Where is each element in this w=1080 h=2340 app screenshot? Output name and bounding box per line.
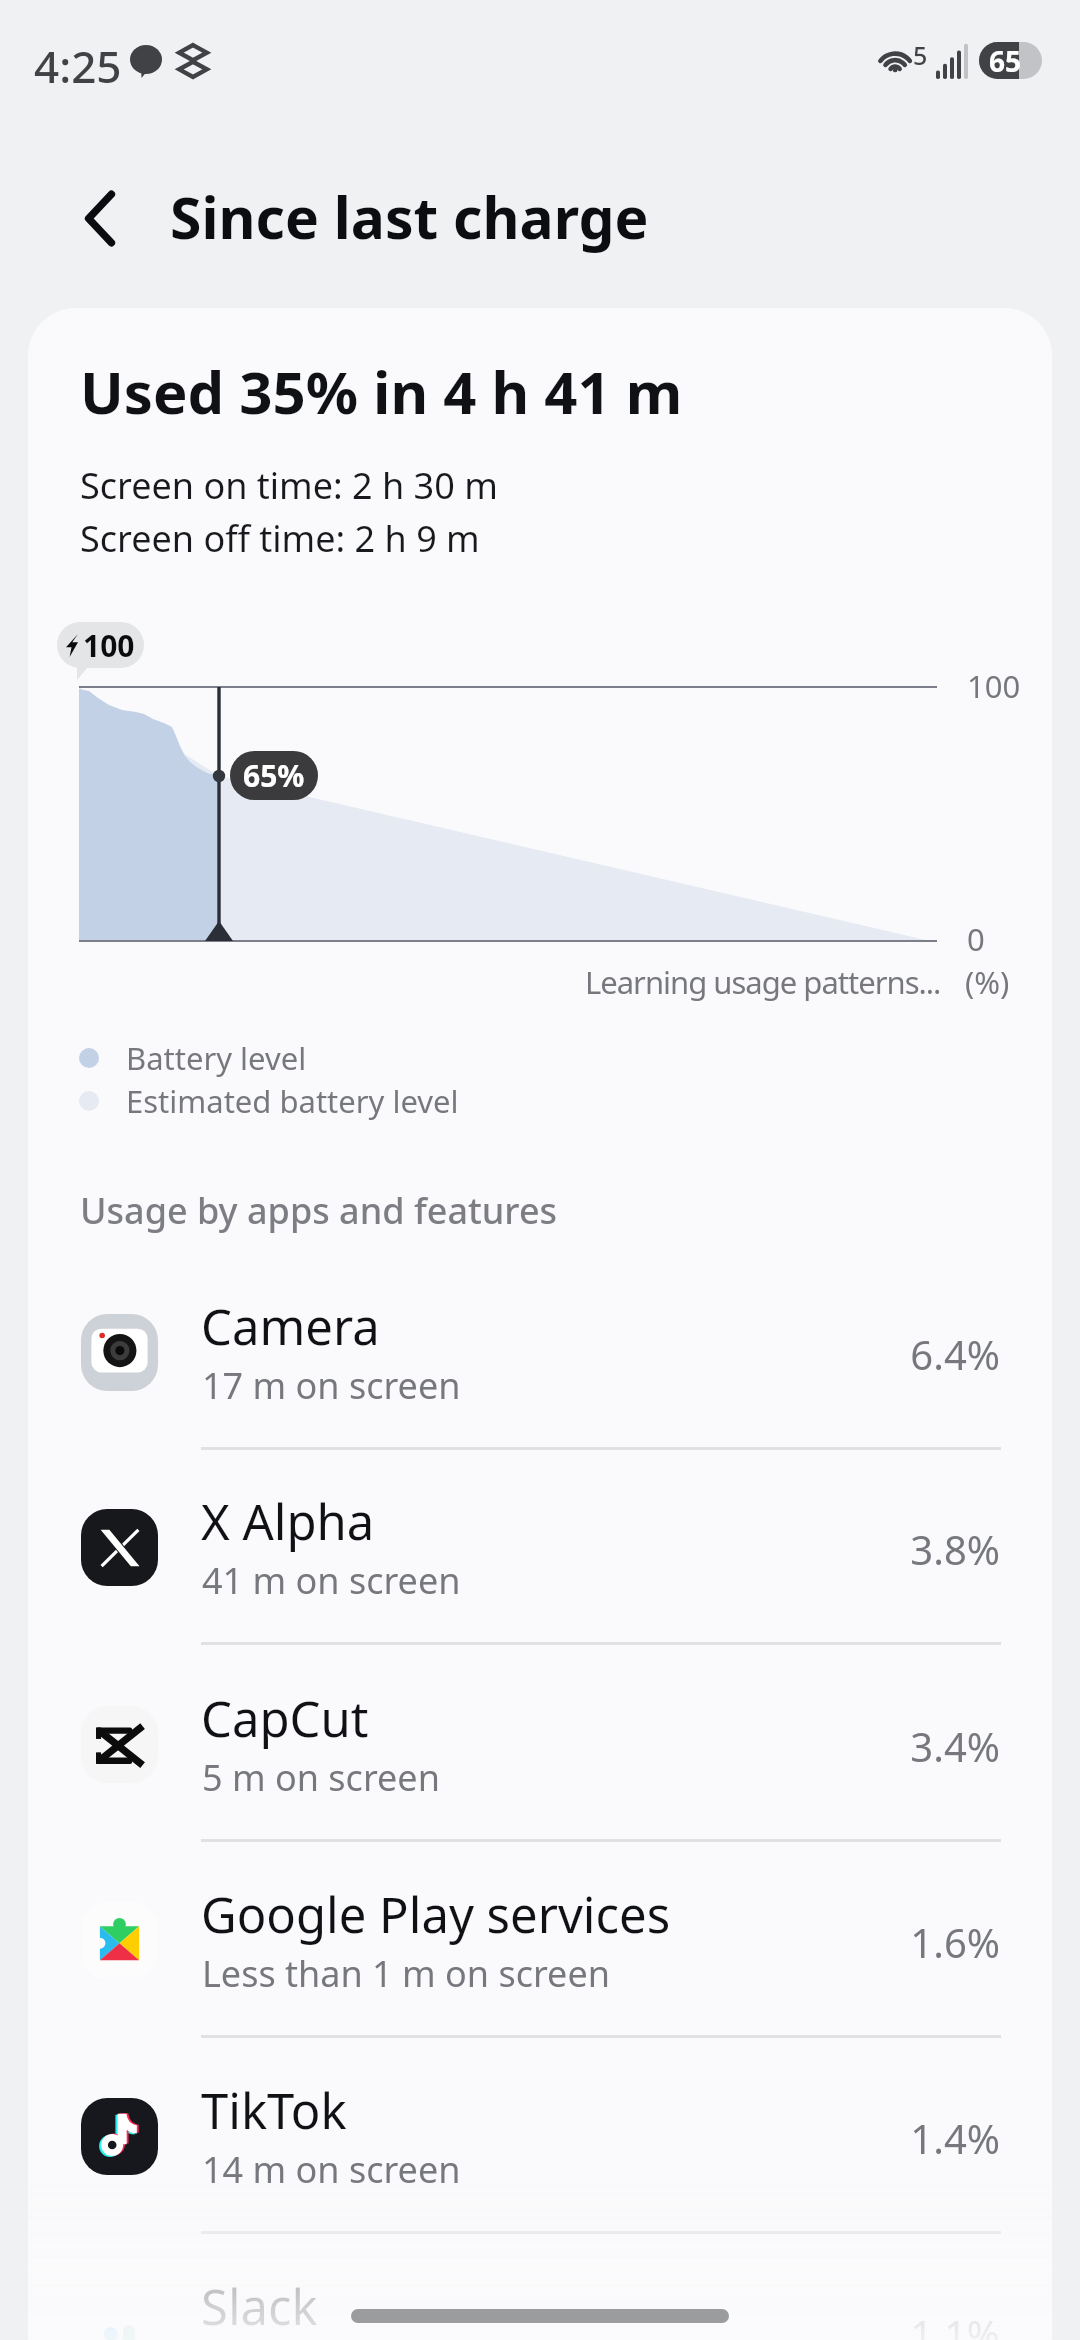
staticText: Google Play services [201,1881,671,1948]
staticText: 3.8% [28,1522,1000,1576]
staticText: 1.1% [28,2307,1000,2340]
staticText: 5 m on screen [202,1753,440,1802]
staticText: 4:25 [34,36,122,96]
staticText: Battery level [126,1037,307,1079]
staticText: 65% [243,755,305,796]
staticText: X Alpha [201,1488,375,1555]
staticText: 100 [967,665,1021,707]
button[interactable]: X Alpha [28,1450,1052,1645]
staticText: 6.4% [28,1327,1000,1381]
button[interactable]: Google Play services [28,1843,1052,2038]
staticText: 41 m on screen [202,1556,461,1605]
staticText: 17 m on screen [202,1361,461,1410]
button[interactable]: Back [60,178,140,258]
staticText: Since last charge [170,178,649,256]
staticText: Usage by apps and features [80,1186,558,1235]
staticText: TikTok [201,2077,347,2144]
staticText: 1.4% [28,2111,1000,2165]
staticText: Estimated battery level [126,1080,459,1122]
staticText: 65 [989,42,1022,79]
staticText: Used 35% in 4 h 41 m [80,352,683,431]
staticText: Less than 1 m on screen [202,1949,610,1998]
staticText: Screen off time: 2 h 9 m [80,514,480,563]
staticText: Camera [201,1293,380,1360]
staticText: (%) [965,961,1010,1003]
button[interactable]: Camera [28,1255,1052,1450]
staticText: Slack [201,2273,318,2340]
button[interactable]: CapCut [28,1647,1052,1842]
staticText: 3.4% [28,1719,1000,1773]
staticText: 14 m on screen [202,2145,461,2194]
staticText: 1.6% [28,1915,1000,1969]
button[interactable]: Slack [28,2235,1052,2340]
staticText: 0 [967,918,985,960]
button[interactable]: TikTok [28,2039,1052,2234]
staticText: 5 [913,38,928,72]
staticText: Learning usage patterns... [585,961,941,1003]
staticText: 100 [83,625,135,666]
staticText: Screen on time: 2 h 30 m [80,461,498,510]
staticText: CapCut [201,1685,369,1752]
